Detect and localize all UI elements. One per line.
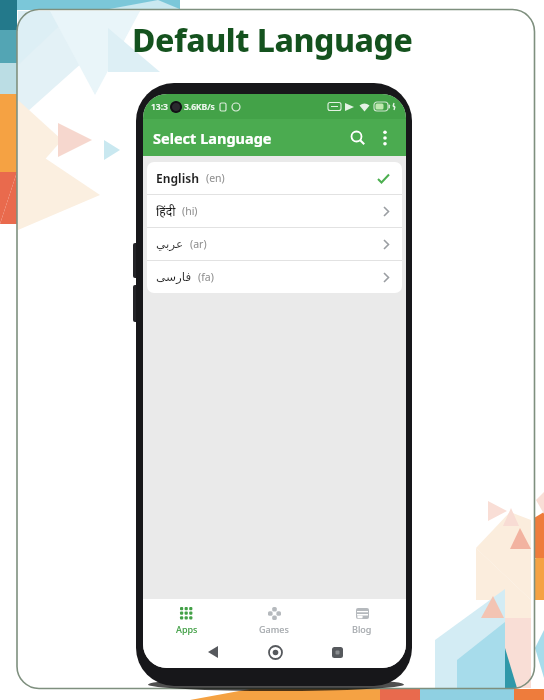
- staticText: (ar): [190, 237, 207, 251]
- button[interactable]: [255, 637, 295, 667]
- staticText: عربي: [156, 237, 184, 251]
- staticText: Default Language: [132, 18, 413, 62]
- staticText: (hi): [182, 204, 198, 218]
- staticText: فارسی: [156, 270, 192, 284]
- staticText: (en): [206, 171, 225, 185]
- button[interactable]: English: [147, 162, 402, 194]
- button[interactable]: فارسی: [147, 261, 402, 293]
- staticText: Select Language: [153, 128, 272, 148]
- staticText: हिंदी: [156, 203, 176, 219]
- button[interactable]: Blog: [318, 599, 406, 635]
- staticText: Blog: [352, 623, 372, 635]
- staticText: 3.6KB/s: [184, 101, 215, 113]
- button[interactable]: [193, 637, 233, 667]
- staticText: English: [156, 170, 200, 186]
- button[interactable]: [317, 637, 357, 667]
- staticText: (fa): [198, 270, 214, 284]
- button[interactable]: Apps: [143, 599, 230, 635]
- staticText: Apps: [176, 623, 198, 635]
- button[interactable]: [376, 129, 394, 147]
- staticText: 13:3: [151, 101, 168, 113]
- button[interactable]: Games: [230, 599, 318, 635]
- button[interactable]: [346, 126, 370, 150]
- button[interactable]: عربي: [147, 228, 402, 260]
- button[interactable]: हिंदी: [147, 195, 402, 227]
- staticText: Games: [259, 623, 289, 635]
